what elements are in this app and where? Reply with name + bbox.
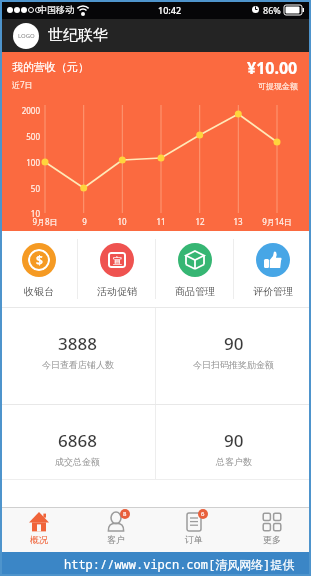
- button[interactable]: 宣: [78, 231, 155, 307]
- staticText: 11: [156, 216, 166, 227]
- staticText: 100: [26, 157, 40, 168]
- staticText: 2000: [21, 105, 40, 116]
- staticText: 8: [123, 510, 127, 518]
- staticText: 近7日: [12, 79, 33, 90]
- staticText: 86%: [263, 4, 281, 16]
- staticText: 10: [30, 208, 40, 219]
- button[interactable]: $: [0, 231, 77, 307]
- staticText: 中国移动: [38, 4, 74, 15]
- staticText: 10: [117, 216, 127, 227]
- button[interactable]: 6868: [0, 405, 155, 479]
- staticText: 13: [233, 216, 243, 227]
- staticText: 评价管理: [253, 285, 293, 298]
- staticText: LOGO: [18, 32, 35, 40]
- staticText: 商品管理: [175, 285, 215, 298]
- staticText: 6868: [58, 429, 97, 452]
- button[interactable]: 更多: [233, 508, 311, 552]
- staticText: 世纪联华: [48, 26, 108, 45]
- button[interactable]: 8: [77, 508, 155, 552]
- staticText: 50: [30, 183, 40, 194]
- staticText: 今日扫码推奖励金额: [193, 359, 274, 370]
- staticText: 成交总金额: [55, 456, 100, 467]
- staticText: 更多: [263, 534, 281, 545]
- button[interactable]: 90: [156, 308, 311, 404]
- staticText: $: [36, 252, 43, 268]
- staticText: 活动促销: [97, 285, 137, 298]
- staticText: ¥10.00: [247, 57, 298, 79]
- staticText: 总客户数: [216, 456, 252, 467]
- button[interactable]: http://www.vipcn.com[清风网络]提供: [0, 552, 311, 576]
- staticText: 90: [224, 429, 244, 452]
- button[interactable]: 6: [155, 508, 233, 552]
- staticText: 9月14日: [262, 216, 292, 227]
- staticText: 12: [195, 216, 205, 227]
- staticText: 6: [201, 510, 205, 518]
- staticText: 今日查看店铺人数: [42, 359, 114, 370]
- staticText: 9: [82, 216, 87, 227]
- staticText: 10:42: [158, 4, 182, 16]
- staticText: http://www.vipcn.com[清风网络]提供: [64, 556, 295, 572]
- button[interactable]: LOGO: [13, 23, 39, 49]
- staticText: 我的营收（元）: [12, 60, 89, 74]
- staticText: 宣: [113, 255, 122, 266]
- staticText: 订单: [185, 534, 203, 545]
- staticText: 500: [26, 131, 40, 142]
- staticText: 客户: [107, 534, 125, 545]
- button[interactable]: 概况: [0, 508, 77, 552]
- staticText: 90: [224, 332, 244, 355]
- staticText: 收银台: [24, 285, 54, 298]
- staticText: 9月8日: [32, 216, 58, 227]
- staticText: 概况: [30, 534, 48, 545]
- button[interactable]: 商品管理: [156, 231, 233, 307]
- button[interactable]: 3888: [0, 308, 155, 404]
- button[interactable]: 90: [156, 405, 311, 479]
- staticText: 可提现金额: [258, 81, 298, 91]
- staticText: 3888: [58, 332, 97, 355]
- button[interactable]: 评价管理: [234, 231, 311, 307]
